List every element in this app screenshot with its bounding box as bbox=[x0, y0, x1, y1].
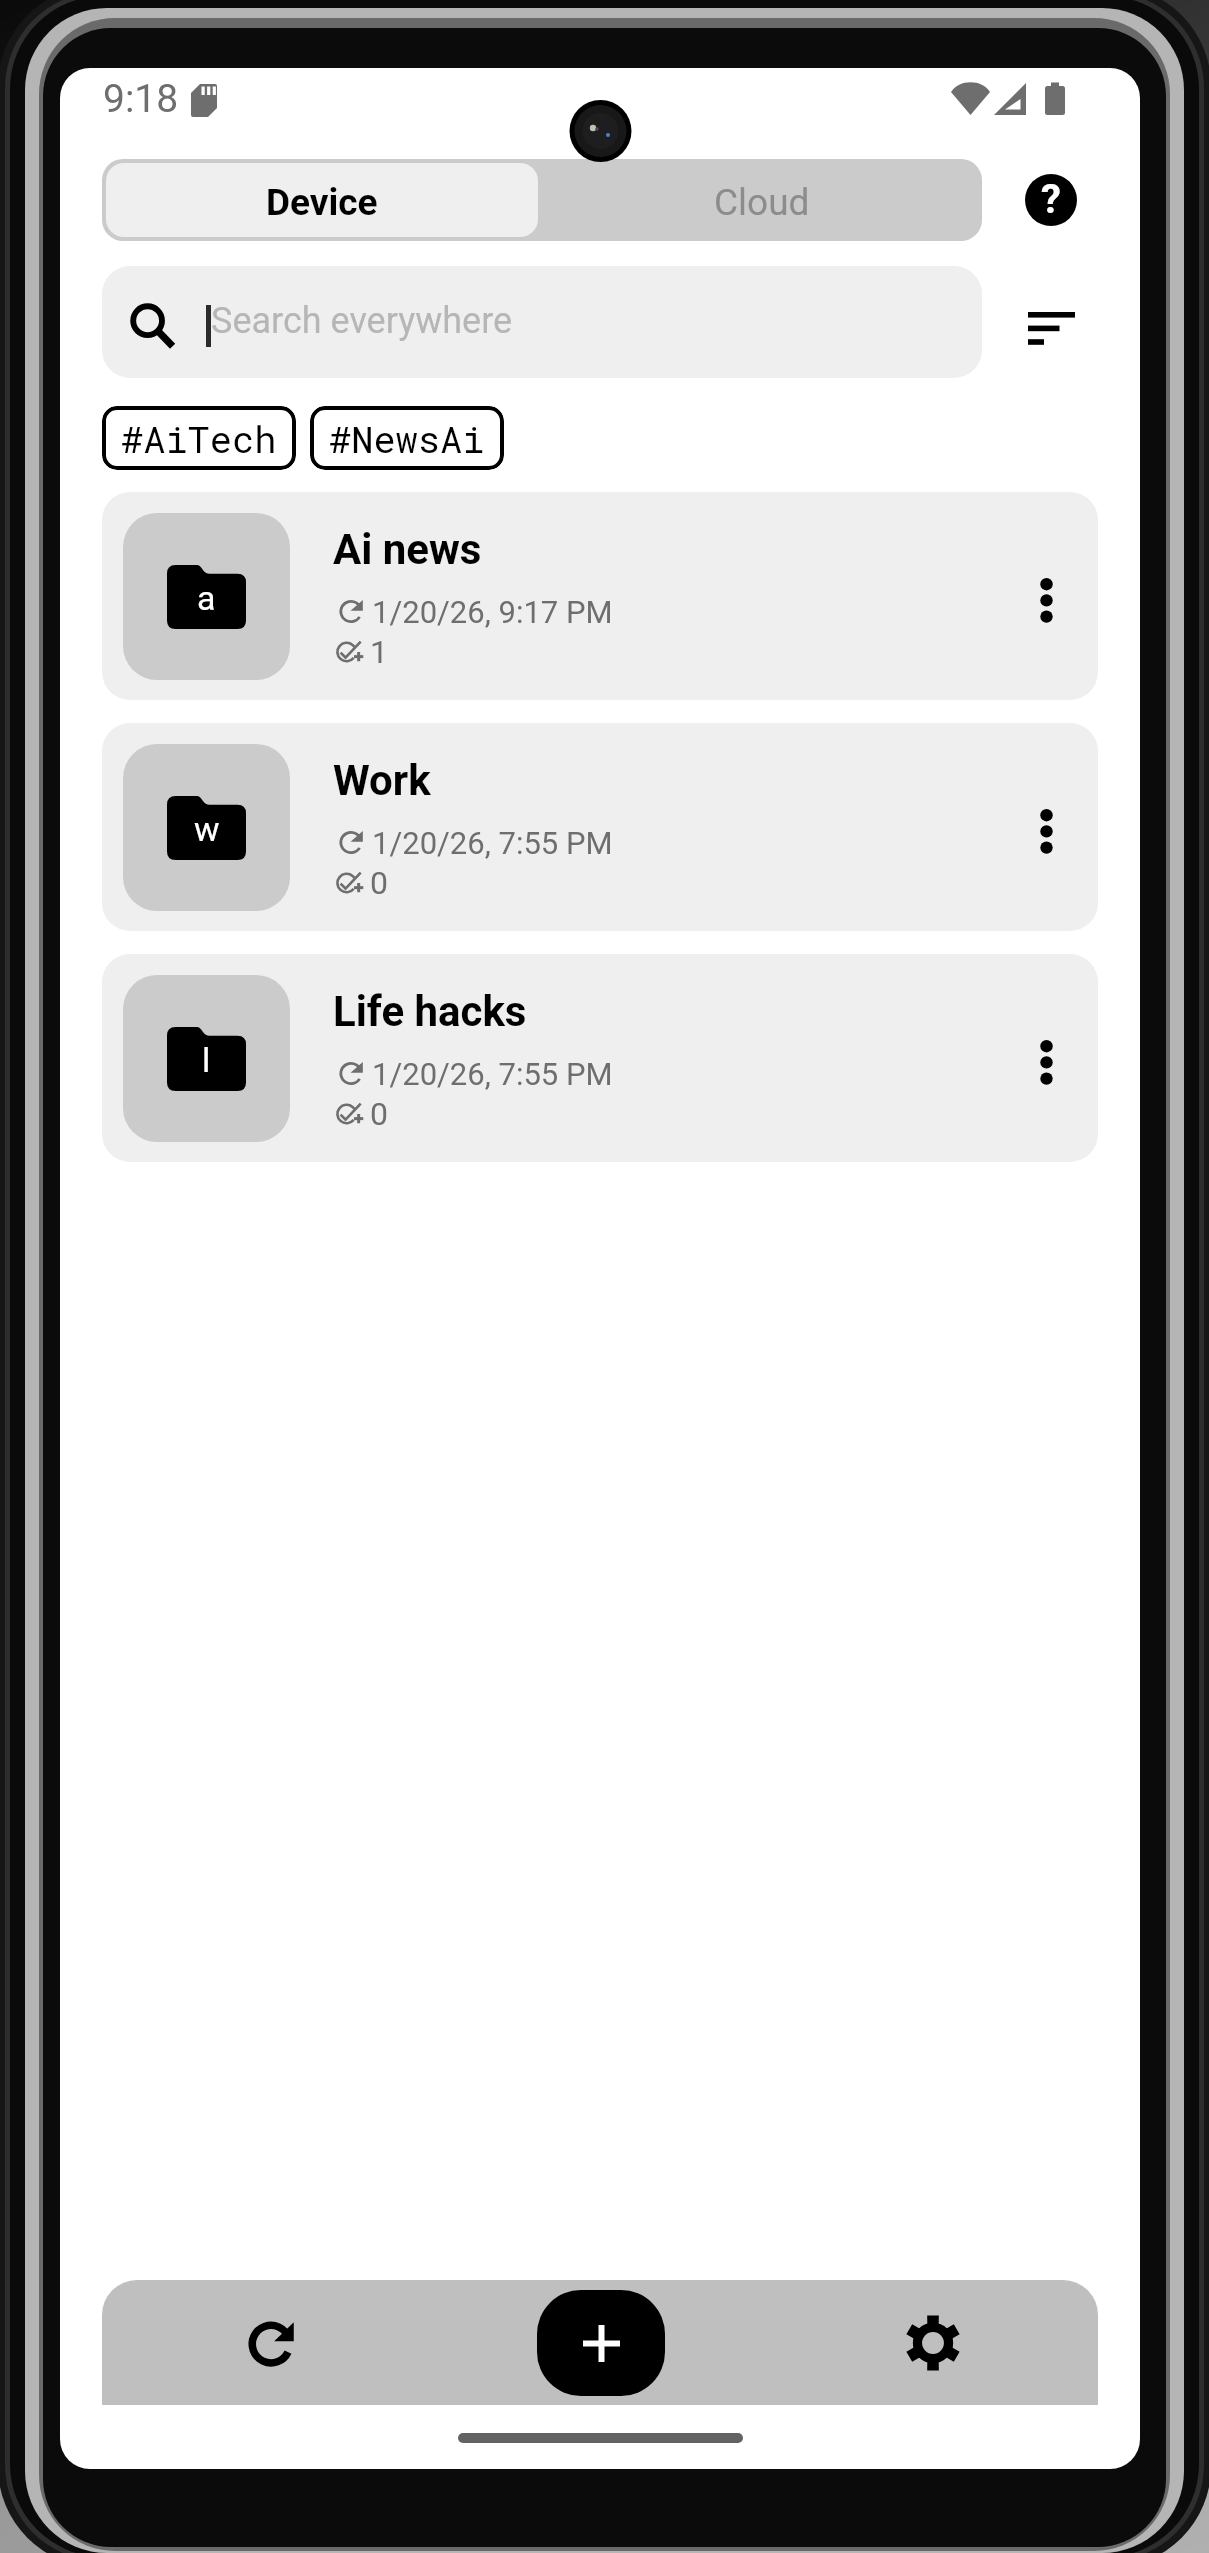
staticText: w bbox=[194, 809, 220, 849]
staticText: l bbox=[202, 1040, 211, 1080]
staticText: 0 bbox=[370, 864, 388, 902]
staticText: 1 bbox=[370, 633, 388, 671]
button[interactable]: l bbox=[102, 954, 1098, 1162]
button[interactable]: #AiTech bbox=[102, 406, 296, 470]
staticText: Ai news bbox=[333, 525, 482, 574]
staticText: 9:18 bbox=[103, 76, 179, 122]
staticText: Life hacks bbox=[333, 987, 527, 1036]
staticText: 1/20/26, 7:55 PM bbox=[372, 825, 613, 861]
button[interactable]: Cloud bbox=[542, 159, 982, 241]
button[interactable]: Help bbox=[1025, 174, 1077, 226]
staticText: 1/20/26, 9:17 PM bbox=[372, 594, 613, 630]
button[interactable]: More options bbox=[1006, 791, 1086, 871]
button[interactable]: w bbox=[102, 723, 1098, 931]
button[interactable]: Refresh bbox=[221, 2293, 321, 2393]
button[interactable]: Settings bbox=[883, 2293, 983, 2393]
button[interactable]: Add bbox=[537, 2290, 665, 2396]
staticText: Device bbox=[266, 181, 378, 224]
staticText: #AiTech bbox=[121, 414, 277, 463]
staticText: Cloud bbox=[714, 181, 810, 224]
button[interactable]: Device bbox=[106, 163, 538, 237]
button[interactable] bbox=[102, 266, 982, 378]
button[interactable]: More options bbox=[1006, 1022, 1086, 1102]
staticText: #NewsAi bbox=[329, 414, 485, 463]
staticText: Search everywhere bbox=[211, 300, 513, 342]
staticText: a bbox=[197, 578, 216, 618]
button[interactable]: a bbox=[102, 492, 1098, 700]
staticText: 1/20/26, 7:55 PM bbox=[372, 1056, 613, 1092]
staticText: 0 bbox=[370, 1095, 388, 1133]
staticText: ? bbox=[1041, 176, 1061, 223]
button[interactable]: Sort bbox=[1010, 290, 1094, 366]
button[interactable]: More options bbox=[1006, 560, 1086, 640]
staticText: Work bbox=[333, 756, 431, 805]
button[interactable]: #NewsAi bbox=[310, 406, 504, 470]
